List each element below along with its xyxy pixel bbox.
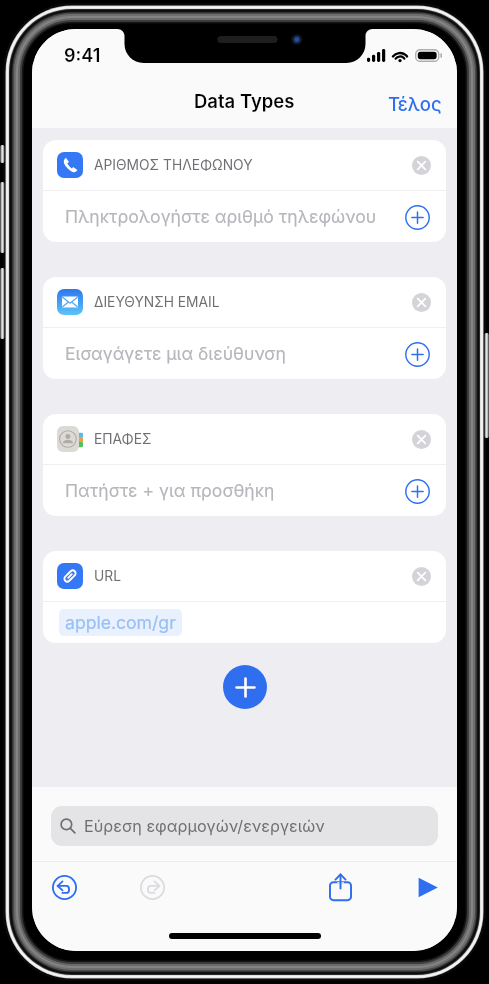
staticText: URL [94, 568, 121, 585]
staticText: apple.com/gr [65, 612, 176, 633]
button[interactable]: Add [400, 200, 434, 234]
button[interactable]: Add [400, 337, 434, 371]
staticText: Data Types [194, 90, 295, 112]
button[interactable]: Τέλος [374, 85, 457, 123]
staticText: Εισαγάγετε μια διεύθυνση [65, 343, 287, 364]
staticText: Πατήστε + για προσθήκη [65, 480, 275, 501]
button[interactable]: Redo [132, 867, 172, 907]
staticText: ΔΙΕΥΘΥΝΣΗ EMAIL [94, 294, 220, 311]
button[interactable]: Run [408, 867, 448, 907]
button[interactable]: ΔΙΕΥΘΥΝΣΗ EMAIL [43, 277, 446, 379]
button[interactable]: Clear [407, 151, 435, 179]
staticText: Εύρεση εφαρμογών/ενεργειών [84, 816, 325, 836]
button[interactable]: URL [43, 551, 446, 643]
staticText: Πληκτρολογήστε αριθμό τηλεφώνου [65, 206, 377, 227]
button[interactable]: Share [320, 867, 360, 907]
staticText: ΕΠΑΦΕΣ [94, 431, 152, 448]
button[interactable]: Clear [407, 288, 435, 316]
button[interactable]: Clear [407, 425, 435, 453]
button[interactable]: Add [400, 474, 434, 508]
button[interactable]: Εύρεση εφαρμογών/ενεργειών [51, 806, 438, 846]
staticText: 9:41 [64, 45, 101, 67]
staticText: ΑΡΙΘΜΟΣ ΤΗΛΕΦΩΝΟΥ [94, 157, 253, 174]
button[interactable]: Undo [44, 867, 84, 907]
button[interactable]: ΑΡΙΘΜΟΣ ΤΗΛΕΦΩΝΟΥ [43, 140, 446, 242]
button[interactable]: Add action [223, 665, 267, 709]
button[interactable]: ΕΠΑΦΕΣ [43, 414, 446, 516]
staticText: Τέλος [388, 93, 442, 115]
button[interactable]: Clear [407, 562, 435, 590]
